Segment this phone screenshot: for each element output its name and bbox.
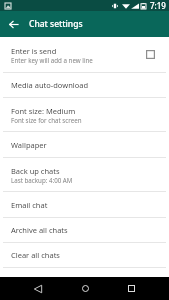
button[interactable]: Home [68,277,102,300]
staticText: Font size: Medium [11,106,76,116]
staticText: Media auto-download [11,80,89,90]
staticText: Archive all chats [11,225,68,235]
button[interactable]: Media auto-download [0,73,169,97]
button[interactable]: Archive all chats [0,218,169,242]
button[interactable]: Back up chats [0,158,169,191]
staticText: Enter key will add a new line [11,56,93,64]
button[interactable]: Clear all chats [0,243,169,267]
staticText: Back up chats [11,166,60,176]
button[interactable]: Wallpaper [0,132,169,157]
button[interactable]: Enter is send [0,37,169,72]
button[interactable]: Recent apps [114,277,148,300]
staticText: Font size for chat screen [11,116,82,124]
staticText: Wallpaper [11,140,47,150]
staticText: Chat settings [29,18,83,30]
button[interactable]: Font size: Medium [0,98,169,131]
button[interactable]: Back [21,277,55,300]
button[interactable]: Navigate up [2,11,24,37]
button[interactable]: Email chat [0,192,169,217]
staticText: Enter is send [11,46,57,56]
staticText: 7:19 [150,0,166,11]
staticText: Clear all chats [11,250,60,260]
staticText: Email chat [11,200,48,210]
staticText: Last backup: 4:00 AM [11,176,73,184]
